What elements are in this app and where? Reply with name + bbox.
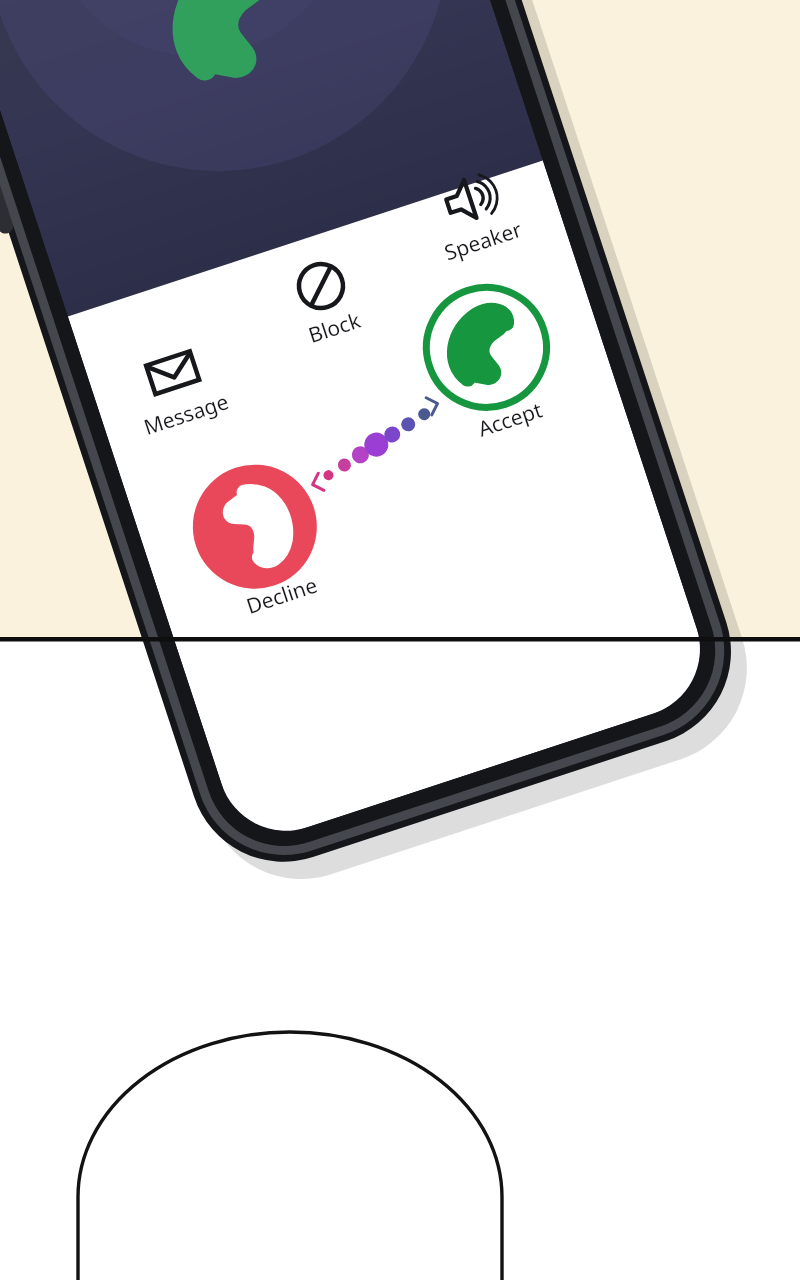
button[interactable]: Accept call	[595, 340, 720, 465]
button[interactable]: Decline call	[310, 420, 450, 550]
button[interactable]: Speaker	[530, 250, 640, 340]
button[interactable]: Block	[400, 280, 500, 370]
button[interactable]: Message	[250, 330, 360, 420]
